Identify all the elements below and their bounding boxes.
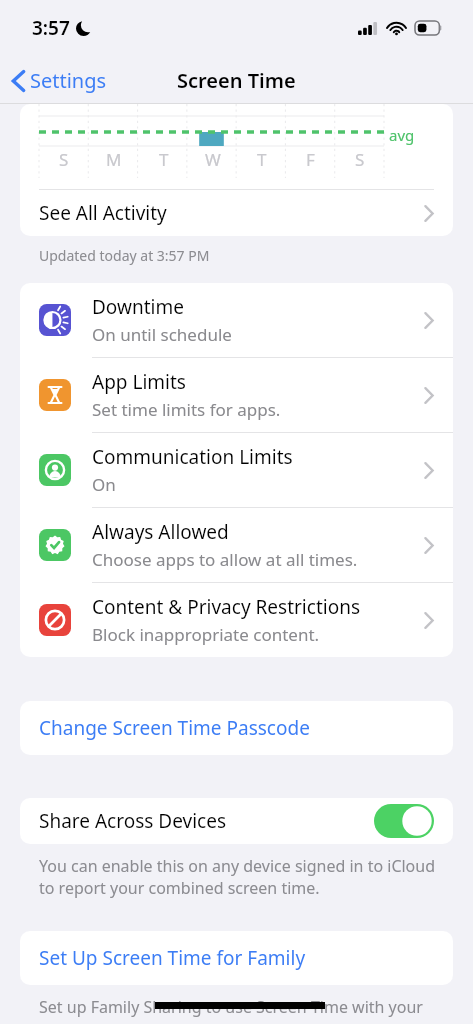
staticText: Content & Privacy Restrictions <box>92 594 360 620</box>
button[interactable]: See All Activity <box>20 190 453 236</box>
staticText: Share Across Devices <box>39 808 227 834</box>
button[interactable]: Share Across Devices <box>20 798 453 844</box>
button[interactable]: Content & Privacy Restrictions <box>20 583 453 657</box>
staticText: Updated today at 3:57 PM <box>39 246 210 265</box>
staticText: Communication Limits <box>92 444 293 470</box>
staticText: Screen Time <box>177 67 296 94</box>
staticText: Choose apps to allow at all times. <box>92 548 358 571</box>
staticText: Set up Family Sharing to use Screen Time… <box>39 996 423 1018</box>
staticText: Downtime <box>92 294 184 320</box>
staticText: See All Activity <box>39 200 167 226</box>
staticText: M <box>106 148 122 171</box>
button[interactable]: Downtime <box>20 283 453 357</box>
button[interactable]: Settings <box>0 61 119 100</box>
staticText: S <box>355 148 365 171</box>
staticText: 3:57 <box>32 15 70 41</box>
button[interactable]: Always Allowed <box>20 508 453 582</box>
button[interactable]: Set Up Screen Time for Family <box>20 931 453 985</box>
staticText: F <box>306 148 315 171</box>
staticText: Set time limits for apps. <box>92 398 281 421</box>
staticText: App Limits <box>92 369 186 395</box>
staticText: On <box>92 473 116 496</box>
staticText: Block inappropriate content. <box>92 623 320 646</box>
button[interactable]: Change Screen Time Passcode <box>20 701 453 755</box>
staticText: T <box>257 148 267 171</box>
staticText: You can enable this on any device signed… <box>39 855 436 899</box>
button[interactable]: Share Across Devices, on <box>374 804 434 838</box>
staticText: Settings <box>30 67 107 94</box>
staticText: W <box>205 148 221 171</box>
button[interactable]: Communication Limits <box>20 433 453 507</box>
button[interactable]: App Limits <box>20 358 453 432</box>
staticText: Always Allowed <box>92 519 229 545</box>
button[interactable]: S <box>20 104 453 190</box>
staticText: avg <box>389 125 415 145</box>
staticText: On until schedule <box>92 323 232 346</box>
staticText: T <box>159 148 169 171</box>
staticText: S <box>59 148 69 171</box>
staticText: Set Up Screen Time for Family <box>39 945 306 971</box>
staticText: Change Screen Time Passcode <box>39 715 310 741</box>
